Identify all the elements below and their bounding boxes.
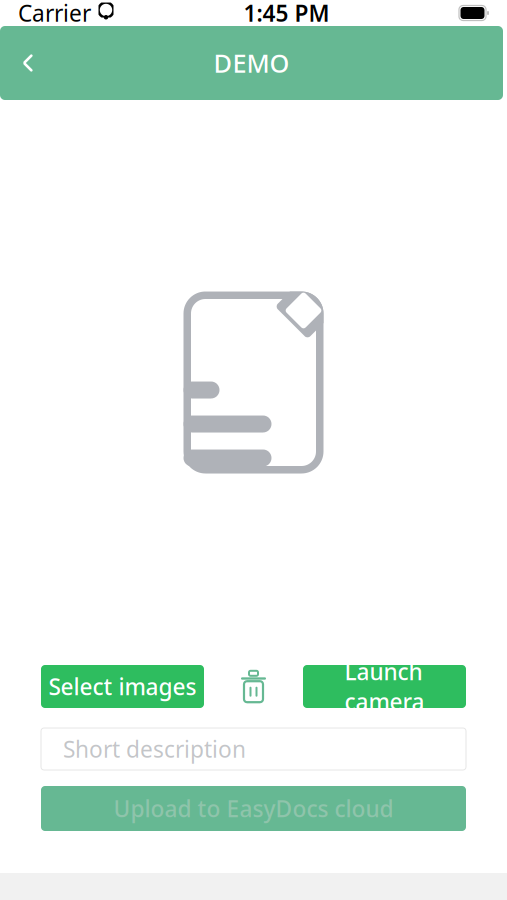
button[interactable]: Select images	[41, 665, 204, 708]
staticText: 1:45 PM	[243, 0, 329, 28]
staticText: Upload to EasyDocs cloud	[113, 793, 393, 823]
button[interactable]: Short description	[41, 728, 466, 770]
button[interactable]: Upload to EasyDocs cloud	[41, 786, 466, 831]
staticText: Short description	[63, 734, 246, 764]
staticText: Carrier	[18, 0, 91, 28]
staticText: DEMO	[213, 46, 289, 80]
staticText: Select images	[48, 671, 196, 701]
button[interactable]: Launch camera	[303, 665, 466, 708]
staticText: Launch camera	[344, 656, 424, 717]
button[interactable]: Delete images	[230, 665, 276, 708]
button[interactable]: Back	[0, 26, 56, 100]
